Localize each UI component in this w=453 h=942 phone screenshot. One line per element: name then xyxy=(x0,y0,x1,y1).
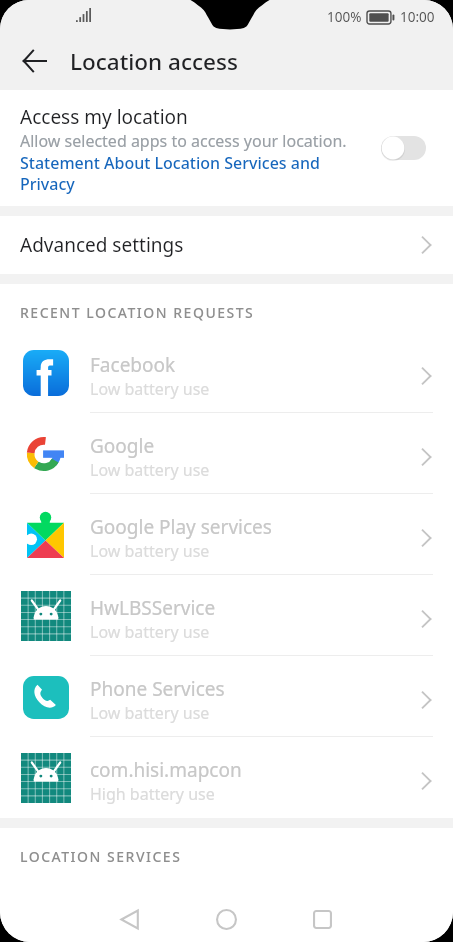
staticText: Google Play services xyxy=(90,514,272,540)
staticText: Low battery use xyxy=(90,540,210,562)
staticText: Low battery use xyxy=(90,459,210,481)
staticText: Google xyxy=(90,433,155,459)
button[interactable]: Home xyxy=(198,891,254,942)
button[interactable]: Access my location xyxy=(0,90,453,206)
button[interactable]: Phone Services xyxy=(0,656,453,737)
button[interactable]: Google Play services xyxy=(0,494,453,575)
button[interactable]: Recent apps xyxy=(294,891,350,942)
staticText: Low battery use xyxy=(90,702,210,724)
staticText: Access my location xyxy=(20,104,188,130)
staticText: LOCATION SERVICES xyxy=(20,847,182,866)
button[interactable]: Advanced settings xyxy=(0,216,453,274)
button[interactable]: Back xyxy=(11,37,58,84)
button[interactable]: Back xyxy=(101,891,157,942)
staticText: Allow selected apps to access your locat… xyxy=(20,130,347,152)
button[interactable]: com.hisi.mapcon xyxy=(0,737,453,818)
staticText: com.hisi.mapcon xyxy=(90,757,242,783)
staticText: RECENT LOCATION REQUESTS xyxy=(20,303,255,322)
staticText: 100% xyxy=(327,8,362,26)
staticText: HwLBSService xyxy=(90,595,216,621)
staticText: Phone Services xyxy=(90,676,225,702)
staticText: Low battery use xyxy=(90,378,210,400)
button[interactable]: Access my location xyxy=(381,136,426,160)
button[interactable]: Google xyxy=(0,413,453,494)
staticText: Advanced settings xyxy=(20,232,184,258)
staticText: Location access xyxy=(70,46,238,77)
staticText: Facebook xyxy=(90,352,176,378)
button[interactable]: HwLBSService xyxy=(0,575,453,656)
staticText: 10:00 xyxy=(400,8,435,26)
button[interactable]: Facebook xyxy=(0,332,453,413)
staticText: Low battery use xyxy=(90,621,210,643)
staticText: High battery use xyxy=(90,783,215,805)
staticText: Statement About Location Services and Pr… xyxy=(20,152,322,195)
